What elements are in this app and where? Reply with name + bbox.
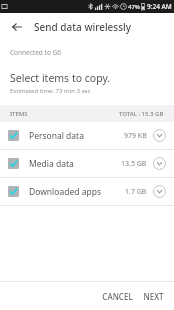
staticText: Media data [29,158,74,170]
button[interactable]: CANCEL [96,286,139,307]
button[interactable]: Expand Downloaded apps [153,185,166,198]
staticText: Select items to copy. [10,71,111,85]
button[interactable]: Expand Media data [153,157,166,170]
button[interactable]: Expand Personal data [153,129,166,142]
staticText: 979 KB [124,131,147,141]
staticText: 13.5 GB [121,159,147,169]
staticText: ITEMS [10,110,28,118]
staticText: Send data wirelessly [34,20,132,34]
button[interactable]: Media data [0,150,174,177]
staticText: NEXT [143,291,164,302]
staticText: TOTAL : 15.3 GB [119,110,164,118]
staticText: Connected to G6 [10,48,61,57]
button[interactable]: NEXT [139,286,174,307]
staticText: Downloaded apps [29,186,101,198]
staticText: 47% [128,3,140,11]
staticText: Personal data [29,130,84,142]
button[interactable]: Downloaded apps [0,178,174,205]
staticText: CANCEL [102,291,133,302]
staticText: 9:24 AM [147,2,172,11]
staticText: 1.7 GB [125,187,147,197]
button[interactable]: Navigate up [7,17,27,37]
staticText: Estimated time: 73 min 3 sec [10,87,91,95]
button[interactable]: Personal data [0,122,174,149]
